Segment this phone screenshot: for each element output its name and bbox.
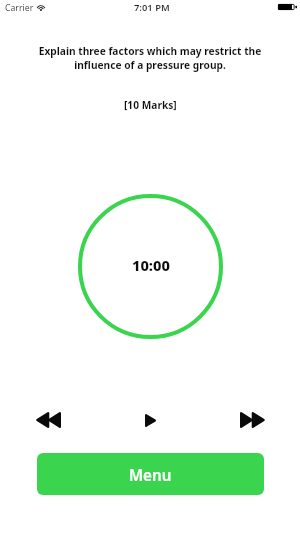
- button[interactable]: Rewind: [33, 405, 63, 435]
- staticText: Menu: [129, 465, 172, 486]
- button[interactable]: Menu: [37, 453, 264, 495]
- button[interactable]: Play: [135, 405, 165, 435]
- staticText: [10 Marks]: [124, 98, 177, 112]
- staticText: 10:00: [132, 255, 170, 275]
- staticText: Carrier: [5, 2, 34, 14]
- staticText: 7:01 PM: [134, 1, 170, 14]
- staticText: Explain three factors which may restrict…: [28, 44, 272, 72]
- button[interactable]: Fast forward: [237, 405, 267, 435]
